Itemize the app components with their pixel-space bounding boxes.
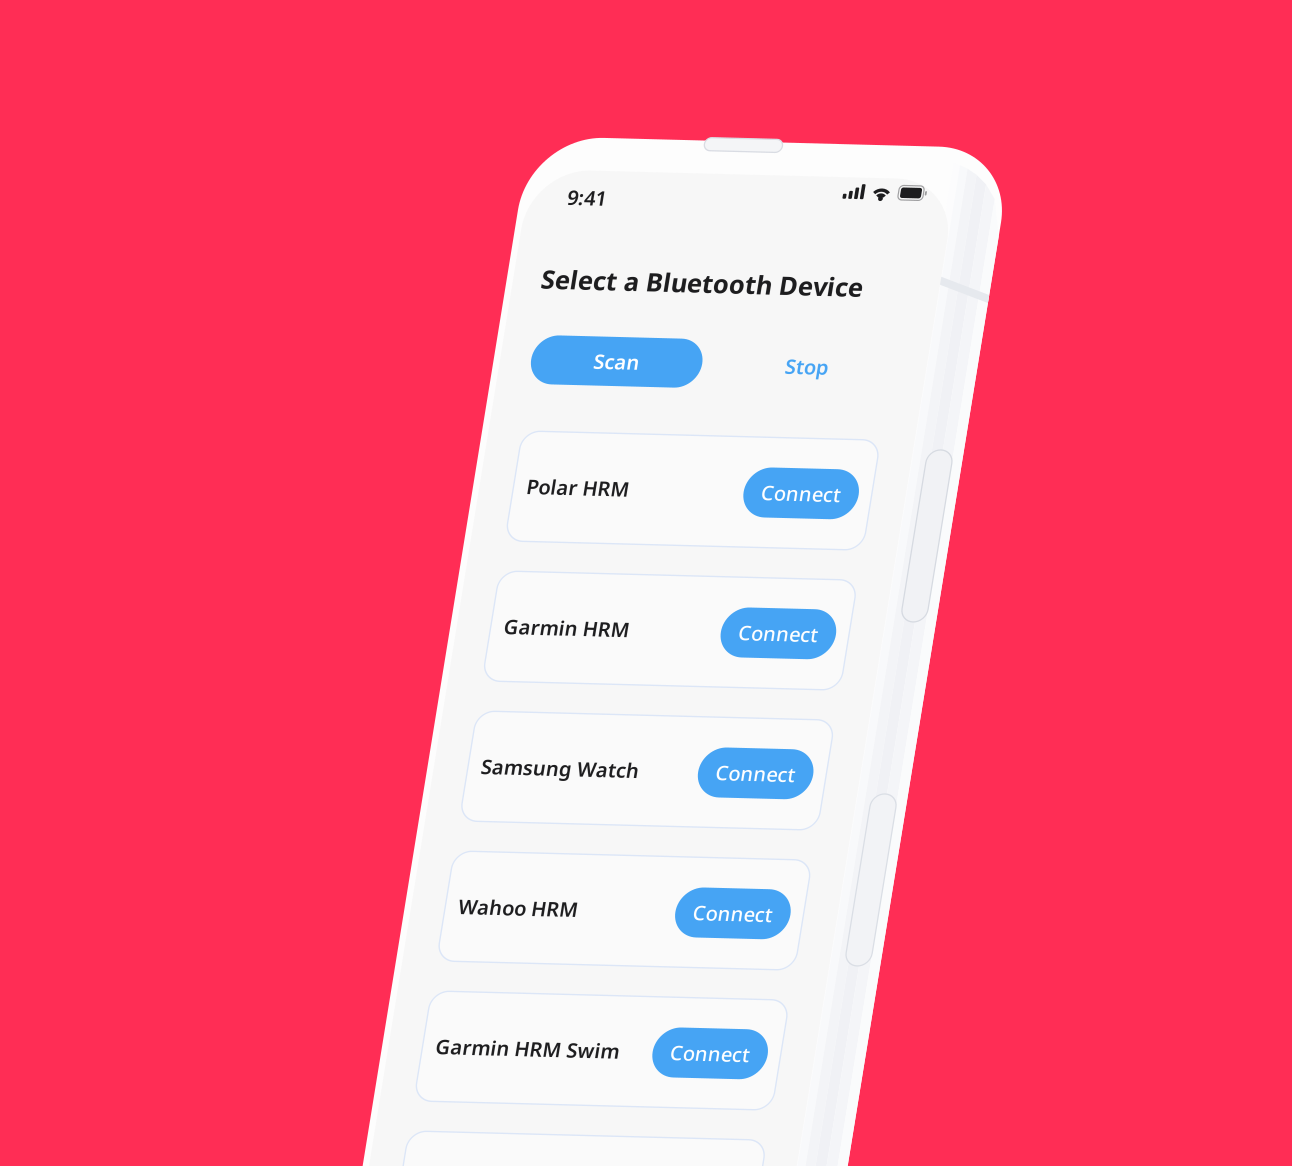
button[interactable]: Google Fit [34, 961, 392, 1071]
